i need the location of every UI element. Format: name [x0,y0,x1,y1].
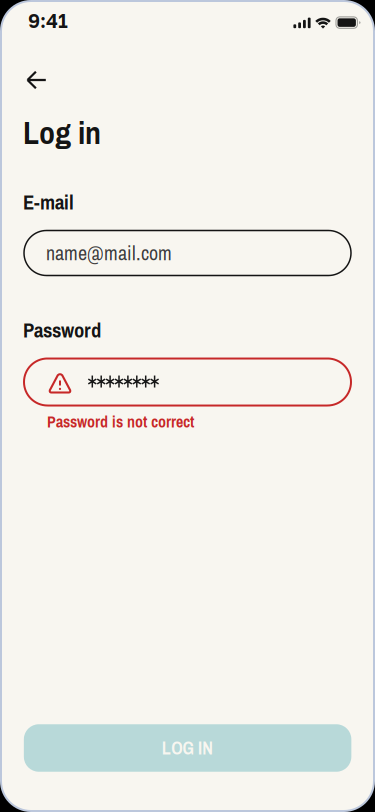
button[interactable]: Back [14,59,58,100]
button[interactable]: Password [24,358,351,405]
button[interactable]: LOG IN [24,724,351,772]
staticText: name@mail.com [46,239,172,266]
staticText: E-mail [23,188,74,216]
staticText: Log in [23,111,101,154]
staticText: Password [23,316,101,344]
staticText: 9:41 [28,9,68,32]
staticText: LOG IN [162,736,213,760]
staticText: Password is not correct [47,411,194,433]
button[interactable]: E-mail [24,230,351,275]
